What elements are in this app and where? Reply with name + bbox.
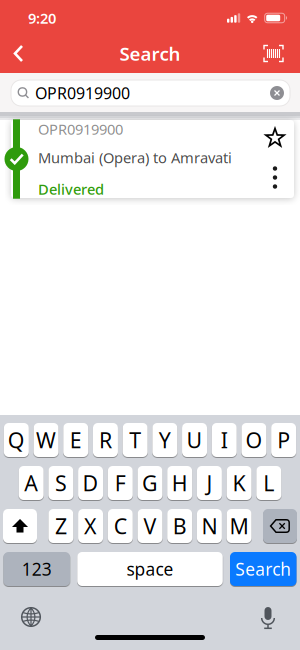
button[interactable]: Back [0,35,24,72]
staticText: 123 [22,557,52,580]
staticText: W [36,426,56,454]
button[interactable]: B [167,509,192,543]
staticText: P [277,426,290,454]
button[interactable]: space [77,552,223,586]
staticText: OPR0919900 [38,119,123,139]
staticText: K [233,469,246,497]
button[interactable]: C [108,509,133,543]
staticText: V [143,512,156,540]
staticText: Search [235,557,291,580]
button[interactable]: Delete [263,509,297,543]
button[interactable]: J [197,466,222,500]
staticText: I [221,426,228,454]
staticText: S [55,469,67,497]
button[interactable]: I [212,423,237,457]
staticText: D [83,469,99,497]
button[interactable]: Scan barcode [263,34,300,72]
button[interactable]: H [167,466,192,500]
button[interactable]: S [48,466,73,500]
button[interactable]: K [227,466,252,500]
button[interactable]: R [93,423,118,457]
staticText: space [126,557,173,580]
button[interactable]: U [182,423,207,457]
button[interactable]: P [271,423,296,457]
button[interactable]: Shift [3,509,37,543]
staticText: OPR0919900 [35,82,130,104]
staticText: A [24,469,38,497]
staticText: X [84,512,97,540]
button[interactable]: Q [4,423,29,457]
staticText: H [172,469,188,497]
staticText: 9:20 [28,8,56,28]
button[interactable]: E [63,423,88,457]
staticText: Q [8,426,25,454]
staticText: Delivered [38,179,104,199]
staticText: M [230,512,249,540]
staticText: L [263,469,274,497]
button[interactable]: More options [267,166,283,189]
button[interactable]: L [256,466,281,500]
button[interactable]: Z [48,509,73,543]
button[interactable]: A [19,466,44,500]
staticText: R [99,426,112,454]
button[interactable]: T [123,423,148,457]
staticText: U [186,426,202,454]
button[interactable]: F [108,466,133,500]
button[interactable]: G [137,466,162,500]
button[interactable]: W [33,423,58,457]
button[interactable]: V [137,509,162,543]
staticText: G [142,469,158,497]
staticText: C [114,512,127,540]
button[interactable]: X [78,509,103,543]
button[interactable]: N [197,509,222,543]
button[interactable]: Clear text [270,86,290,100]
staticText: O [245,426,262,454]
button[interactable]: Favorite [265,127,285,147]
button[interactable]: D [78,466,103,500]
button[interactable]: Next keyboard [0,607,41,627]
staticText: J [206,469,212,497]
staticText: T [129,426,141,454]
button[interactable]: OPR0919900 [0,120,300,198]
button[interactable]: Search [230,552,296,586]
staticText: Z [55,512,67,540]
button[interactable]: Y [152,423,177,457]
staticText: Search [119,41,180,66]
staticText: N [201,512,217,540]
staticText: B [173,512,187,540]
staticText: F [115,469,126,497]
button[interactable]: M [227,509,252,543]
button[interactable]: O [241,423,266,457]
staticText: E [70,426,82,454]
staticText: Mumbai (Opera) to Amravati [38,148,232,167]
button[interactable]: 123 [3,552,70,586]
staticText: Y [159,426,171,454]
button[interactable]: Dictate [261,607,300,629]
